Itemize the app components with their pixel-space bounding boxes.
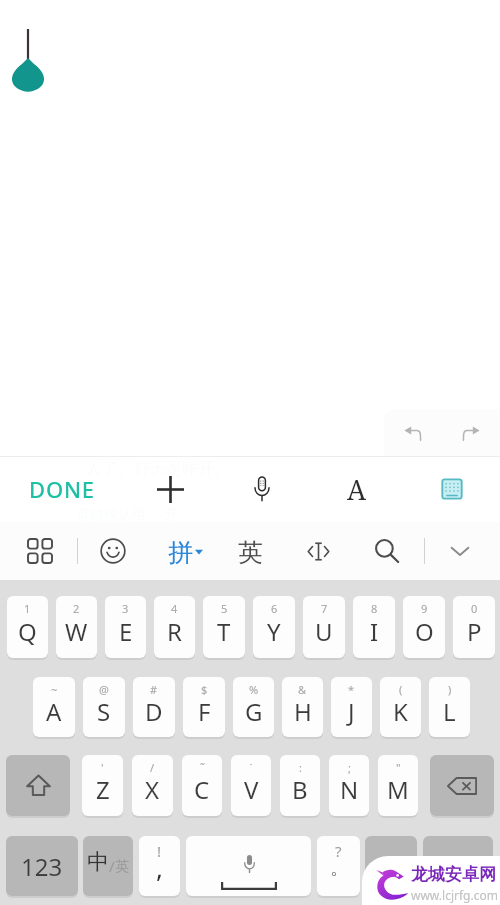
staticText: $ bbox=[201, 682, 208, 697]
staticText: 人了。好天是昨开。 bbox=[86, 459, 230, 479]
button[interactable]: ~ bbox=[33, 677, 75, 737]
button[interactable]: ' bbox=[82, 755, 123, 816]
button[interactable]: 0 bbox=[453, 596, 495, 658]
button[interactable]: 8 bbox=[353, 596, 395, 658]
button[interactable]: 2 bbox=[56, 596, 97, 658]
staticText: 中 bbox=[87, 848, 109, 876]
staticText: G bbox=[245, 695, 263, 728]
button[interactable]: & bbox=[282, 677, 323, 737]
staticText: 8 bbox=[371, 601, 378, 616]
staticText: ! bbox=[157, 841, 162, 861]
button[interactable]: ˙ bbox=[231, 755, 271, 816]
button[interactable]: ( bbox=[380, 677, 421, 737]
staticText: S bbox=[97, 695, 111, 728]
button[interactable]: 7 bbox=[303, 596, 345, 658]
staticText: M bbox=[387, 773, 409, 806]
button[interactable]: Apps bbox=[4, 522, 76, 580]
staticText: DONE bbox=[29, 474, 95, 504]
button[interactable]: Shift bbox=[6, 755, 70, 816]
staticText: A bbox=[46, 695, 62, 728]
button[interactable]: Emoji bbox=[81, 522, 145, 580]
staticText: & bbox=[298, 682, 307, 697]
button[interactable]: 9 bbox=[403, 596, 445, 658]
button[interactable]: / bbox=[132, 755, 173, 816]
button[interactable]: Voice input bbox=[218, 456, 306, 522]
button[interactable]: ˜ bbox=[182, 755, 222, 816]
staticText: C bbox=[194, 773, 210, 806]
staticText: 英 bbox=[238, 537, 263, 568]
staticText: Q bbox=[18, 615, 37, 648]
staticText: E bbox=[119, 615, 133, 648]
staticText: N bbox=[340, 773, 359, 806]
staticText: R bbox=[167, 615, 182, 648]
button[interactable]: ! bbox=[139, 836, 180, 896]
staticText: 3 bbox=[122, 601, 129, 616]
staticText: / bbox=[150, 760, 155, 775]
staticText: ( bbox=[399, 682, 403, 697]
button[interactable]: Comma bbox=[365, 836, 417, 896]
button[interactable]: " bbox=[378, 755, 418, 816]
button[interactable]: @ bbox=[83, 677, 125, 737]
staticText: 4 bbox=[171, 601, 178, 616]
staticText: 拼 bbox=[168, 537, 193, 568]
button[interactable]: Space bbox=[186, 836, 311, 896]
button[interactable]: $ bbox=[183, 677, 225, 737]
staticText: 1 bbox=[24, 601, 31, 616]
button[interactable]: DONE bbox=[16, 456, 108, 522]
button[interactable]: Undo bbox=[384, 409, 442, 457]
button[interactable]: # bbox=[133, 677, 175, 737]
button[interactable]: 4 bbox=[154, 596, 195, 658]
button[interactable]: ) bbox=[429, 677, 470, 737]
staticText: Z bbox=[96, 773, 110, 806]
staticText: W bbox=[65, 615, 88, 648]
button[interactable]: 英 bbox=[219, 522, 281, 580]
staticText: " bbox=[396, 760, 401, 775]
button[interactable]: Hide keyboard bbox=[425, 522, 495, 580]
staticText: L bbox=[443, 695, 456, 728]
staticText: ? bbox=[335, 841, 342, 861]
button[interactable]: 123 bbox=[6, 836, 78, 896]
button[interactable]: % bbox=[233, 677, 274, 737]
staticText: ˜ bbox=[200, 760, 205, 775]
button[interactable]: 拼 bbox=[152, 522, 218, 580]
staticText: , bbox=[156, 850, 163, 885]
button[interactable]: 6 bbox=[253, 596, 295, 658]
staticText: ， bbox=[381, 854, 401, 879]
staticText: 。 bbox=[330, 857, 348, 880]
staticText: 7 bbox=[321, 601, 328, 616]
staticText: 龙城安卓网 bbox=[411, 864, 496, 885]
button[interactable]: 3 bbox=[105, 596, 146, 658]
button[interactable]: Keyboard bbox=[408, 456, 496, 522]
staticText: * bbox=[348, 682, 355, 697]
staticText: I bbox=[370, 615, 379, 648]
staticText: / bbox=[109, 856, 115, 876]
button[interactable]: 中 bbox=[83, 836, 133, 896]
staticText: % bbox=[249, 682, 259, 697]
staticText: : bbox=[299, 760, 302, 775]
staticText: 0 bbox=[471, 601, 478, 616]
button[interactable]: 1 bbox=[7, 596, 48, 658]
button[interactable]: Text style bbox=[313, 456, 401, 522]
staticText: ; bbox=[348, 760, 351, 775]
button[interactable]: ; bbox=[329, 755, 369, 816]
button[interactable]: ? bbox=[317, 836, 360, 896]
staticText: # bbox=[150, 682, 158, 697]
button[interactable]: * bbox=[331, 677, 372, 737]
button[interactable]: : bbox=[280, 755, 320, 816]
button[interactable]: Backspace bbox=[430, 755, 494, 816]
button[interactable]: 5 bbox=[203, 596, 245, 658]
button[interactable]: Move cursor bbox=[286, 522, 350, 580]
staticText: ~ bbox=[51, 682, 58, 697]
button[interactable]: Redo bbox=[442, 409, 500, 457]
button[interactable]: Search bbox=[355, 522, 419, 580]
staticText: T bbox=[217, 615, 231, 648]
staticText: J bbox=[348, 695, 355, 728]
button[interactable]: Enter bbox=[423, 836, 493, 896]
staticText: D bbox=[145, 695, 163, 728]
staticText: ˙ bbox=[250, 760, 253, 775]
staticText: ' bbox=[101, 760, 104, 775]
staticText: ) bbox=[448, 682, 452, 697]
button[interactable]: Add bbox=[126, 456, 214, 522]
staticText: B bbox=[292, 773, 308, 806]
